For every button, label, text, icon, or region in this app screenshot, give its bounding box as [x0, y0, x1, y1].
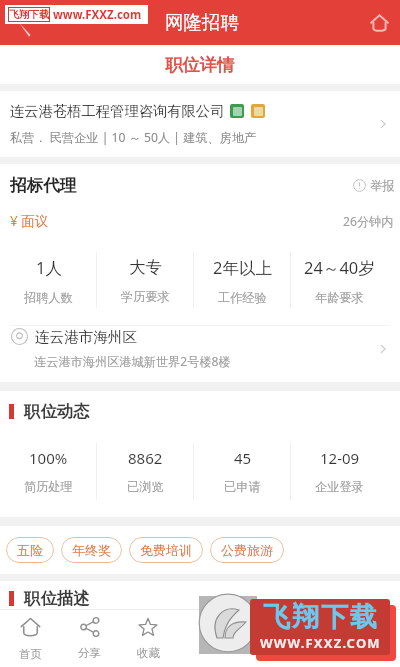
button[interactable]: 连云港市海州区	[0, 326, 400, 382]
staticText: 职位动态	[24, 401, 90, 422]
staticText: 24～40岁	[304, 256, 375, 279]
staticText: 连云港苍梧工程管理咨询有限公司	[10, 102, 225, 120]
staticText: 五险	[17, 542, 43, 558]
button[interactable]: 分享	[61, 609, 118, 667]
staticText: 举报	[370, 178, 395, 193]
staticText: 职位描述	[24, 588, 90, 609]
staticText: 公费旅游	[221, 542, 273, 558]
staticText: 年终奖	[72, 542, 111, 558]
staticText: 分享	[78, 646, 101, 660]
staticText: 2年以上	[213, 256, 272, 279]
staticText: www.FXXZ.com	[53, 7, 142, 23]
staticText: 免费培训	[140, 542, 192, 558]
button[interactable]: 年终奖	[61, 537, 122, 563]
staticText: 职位详情	[165, 54, 235, 76]
staticText: 简历处理	[24, 479, 73, 494]
button[interactable]: 公费旅游	[210, 537, 284, 563]
staticText: 100%	[29, 448, 68, 468]
staticText: 网隆招聘	[165, 11, 239, 34]
button[interactable]: 首页	[0, 609, 61, 667]
staticText: 招标代理	[10, 175, 349, 196]
staticText: 连云港市海州区	[35, 328, 138, 346]
button[interactable]: 免费培训	[129, 537, 203, 563]
staticText: 8862	[128, 448, 163, 468]
staticText: 已浏览	[127, 479, 164, 494]
staticText: ¥ 面议	[10, 212, 343, 230]
staticText: 飞翔下载	[9, 8, 49, 21]
staticText: 飞翔下载	[262, 600, 378, 634]
staticText: 26分钟内	[343, 213, 394, 230]
staticText: 1人	[36, 256, 62, 279]
button[interactable]: 连云港苍梧工程管理咨询有限公司	[0, 91, 400, 157]
button[interactable]: 五险	[6, 537, 54, 563]
staticText: 私营． 民营企业 | 10 ～ 50人 | 建筑、房地产	[10, 129, 257, 146]
staticText: 大专	[129, 257, 162, 278]
staticText: 连云港市海州区港城新世界2号楼8楼	[34, 353, 231, 370]
staticText: 工作经验	[218, 290, 267, 305]
staticText: 12-09	[320, 448, 360, 468]
button[interactable]: Home	[359, 3, 399, 43]
staticText: 学历要求	[121, 289, 170, 304]
button[interactable]: 收藏	[118, 609, 178, 667]
button[interactable]: 举报	[349, 174, 395, 197]
staticText: 招聘人数	[24, 290, 73, 305]
staticText: 收藏	[137, 646, 160, 660]
staticText: WWW.FXXZ.COM	[260, 634, 381, 652]
staticText: 45	[234, 448, 252, 468]
staticText: 首页	[19, 647, 42, 661]
staticText: 企业登录	[315, 479, 364, 494]
button[interactable]	[178, 609, 400, 667]
staticText: 年龄要求	[315, 290, 364, 305]
staticText: 已申请	[224, 479, 261, 494]
